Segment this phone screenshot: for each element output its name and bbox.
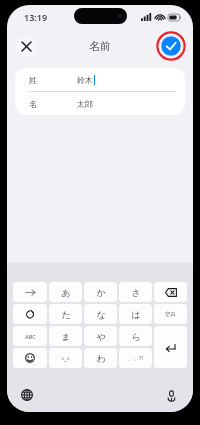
button[interactable]: 、。?!: [119, 348, 152, 368]
button[interactable]: arrow: [13, 282, 47, 302]
staticText: 13:19: [24, 11, 48, 23]
staticText: 名: [29, 99, 77, 109]
button[interactable]: ABC: [13, 326, 47, 346]
staticText: 、。?!: [128, 354, 143, 362]
button[interactable]: 名: [15, 92, 185, 115]
button[interactable]: や: [84, 326, 117, 346]
button[interactable]: 姓: [15, 68, 185, 91]
staticText: 姓: [29, 75, 77, 85]
button[interactable]: 空白: [154, 304, 187, 324]
staticText: ら: [131, 331, 141, 342]
button[interactable]: Dictation: [163, 387, 179, 403]
staticText: 空白: [165, 311, 176, 318]
staticText: 太郎: [77, 99, 93, 109]
staticText: ^_^: [61, 355, 70, 362]
button[interactable]: た: [49, 304, 82, 324]
button[interactable]: な: [84, 304, 117, 324]
staticText: 名前: [89, 39, 111, 53]
button[interactable]: emoji: [13, 348, 47, 368]
staticText: あ: [61, 287, 71, 298]
button[interactable]: わ: [84, 348, 117, 368]
button[interactable]: さ: [119, 282, 152, 302]
button[interactable]: del: [154, 282, 187, 302]
staticText: 鈴木: [77, 75, 93, 85]
button[interactable]: ^_^: [49, 348, 82, 368]
staticText: た: [61, 309, 71, 320]
button[interactable]: enter: [154, 326, 187, 368]
button[interactable]: は: [119, 304, 152, 324]
button[interactable]: あ: [49, 282, 82, 302]
button[interactable]: ら: [119, 326, 152, 346]
button[interactable]: Done: [156, 31, 186, 61]
button[interactable]: Change keyboard: [19, 387, 35, 403]
staticText: さ: [131, 287, 141, 298]
button[interactable]: ま: [49, 326, 82, 346]
staticText: や: [96, 331, 106, 342]
button[interactable]: undo: [13, 304, 47, 324]
staticText: ABC: [25, 333, 36, 340]
staticText: は: [131, 309, 141, 320]
staticText: か: [96, 287, 106, 298]
staticText: な: [96, 309, 106, 320]
button[interactable]: Close: [16, 36, 37, 57]
staticText: ま: [61, 331, 71, 342]
staticText: わ: [96, 353, 106, 364]
button[interactable]: か: [84, 282, 117, 302]
